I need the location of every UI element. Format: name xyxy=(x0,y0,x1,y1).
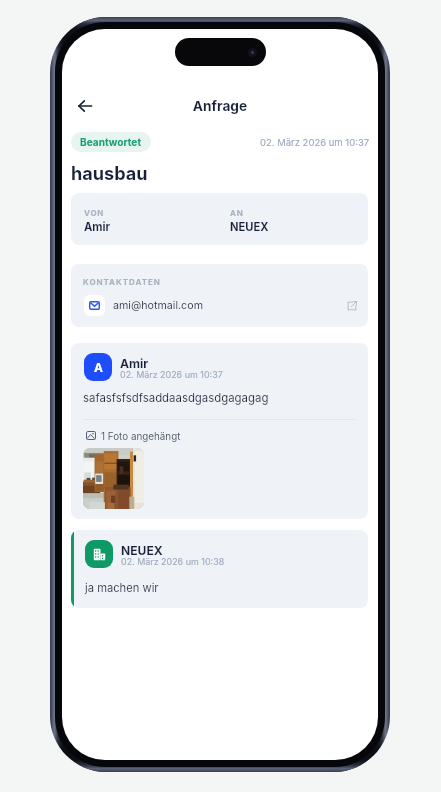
staticText: Beantwortet xyxy=(80,136,142,148)
staticText: AN xyxy=(230,208,244,218)
staticText: A xyxy=(94,360,103,375)
staticText: Amir xyxy=(84,220,111,234)
staticText: NEUEX xyxy=(121,543,163,558)
button[interactable]: Zurück xyxy=(67,88,103,124)
button[interactable]: ami@hotmail.com xyxy=(71,291,368,319)
staticText: hausbau xyxy=(71,162,148,184)
staticText: ami@hotmail.com xyxy=(113,299,203,312)
staticText: NEUEX xyxy=(230,220,269,234)
staticText: Anfrage xyxy=(62,98,378,115)
button[interactable]: Foto xyxy=(83,448,144,509)
staticText: KONTAKTDATEN xyxy=(83,277,161,287)
staticText: 02. März 2026 um 10:38 xyxy=(121,556,225,567)
staticText: 1 Foto angehängt xyxy=(101,430,181,442)
button[interactable]: Beantwortet xyxy=(71,132,151,152)
staticText: 02. März 2026 um 10:37 xyxy=(260,137,370,148)
staticText: 02. März 2026 um 10:37 xyxy=(120,369,223,380)
staticText: Amir xyxy=(120,356,149,371)
staticText: VON xyxy=(84,208,105,218)
staticText: safasfsfsdfsaddaasdgasdgagagag xyxy=(83,391,269,405)
staticText: ja machen wir xyxy=(85,581,159,595)
